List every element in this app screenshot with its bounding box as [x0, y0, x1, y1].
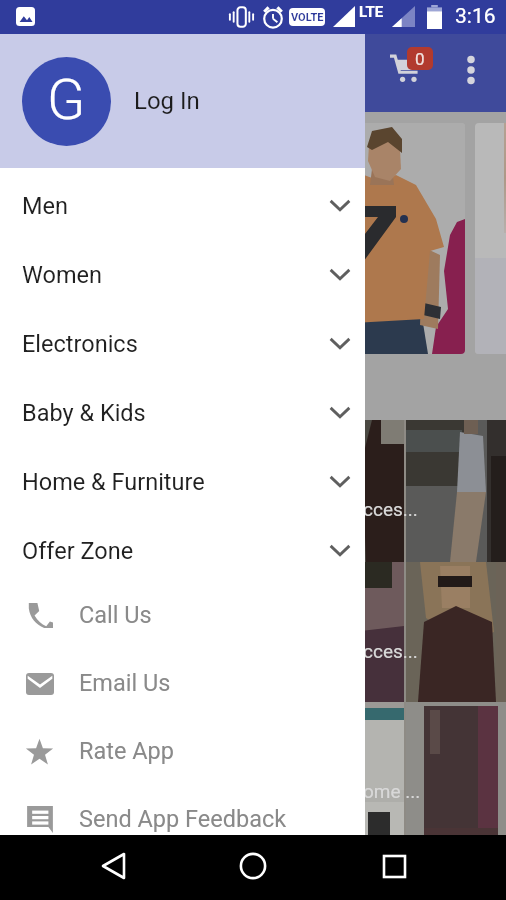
staticText: 3:16	[455, 4, 496, 29]
staticText: Offer Zone	[22, 537, 134, 565]
staticText: ome ...	[363, 780, 421, 802]
staticText: 0	[415, 49, 425, 69]
staticText: Men	[22, 192, 68, 220]
button[interactable]: Recent apps	[369, 841, 419, 891]
button[interactable]: Call Us	[0, 581, 365, 649]
staticText: cces...	[363, 640, 418, 662]
staticText: LTE	[359, 3, 384, 21]
staticText: VOLTE	[291, 11, 324, 24]
staticText: cces...	[363, 498, 418, 520]
staticText: G	[47, 67, 86, 133]
button[interactable]: Women	[0, 240, 365, 308]
button[interactable]: Home & Furniture	[0, 447, 365, 515]
staticText: Send App Feedback	[79, 805, 287, 833]
button[interactable]: Men	[0, 171, 365, 239]
staticText: Log In	[134, 87, 200, 115]
button[interactable]: Send App Feedback	[0, 785, 365, 853]
button[interactable]: G	[22, 34, 365, 168]
button[interactable]	[12, 123, 465, 354]
button[interactable]: cces...	[0, 420, 506, 562]
button[interactable]: Baby & Kids	[0, 378, 365, 446]
staticText: Baby & Kids	[22, 399, 146, 427]
staticText: Email Us	[79, 669, 171, 697]
button[interactable]: Rate App	[0, 717, 365, 785]
button[interactable]	[475, 123, 506, 354]
button[interactable]: Back	[88, 841, 138, 891]
staticText: Call Us	[79, 601, 152, 629]
button[interactable]: Home	[228, 841, 278, 891]
button[interactable]: More options	[447, 46, 495, 94]
staticText: Home & Furniture	[22, 468, 205, 496]
button[interactable]: Offer Zone	[0, 516, 365, 584]
staticText: Women	[22, 261, 102, 289]
button[interactable]: Email Us	[0, 649, 365, 717]
staticText: Electronics	[22, 330, 138, 358]
button[interactable]: ome ...	[0, 702, 506, 842]
button[interactable]: Cart	[381, 40, 433, 92]
button[interactable]: Electronics	[0, 309, 365, 377]
button[interactable]: cces...	[0, 562, 506, 702]
staticText: Rate App	[79, 737, 174, 765]
